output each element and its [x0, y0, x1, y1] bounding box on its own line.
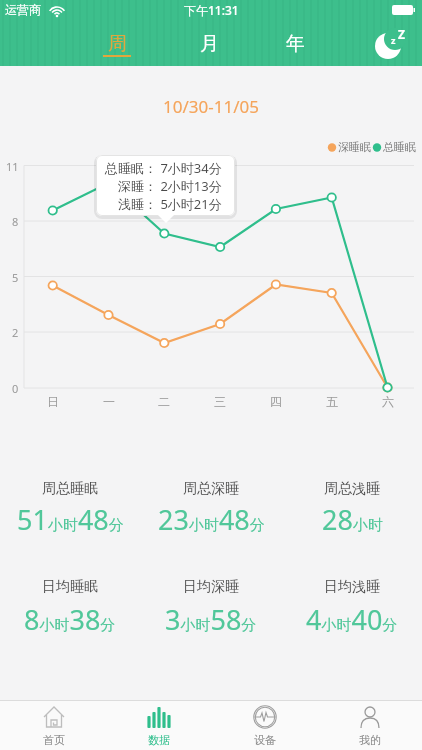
staticText: 10/30-11/05 [163, 95, 259, 118]
button[interactable]: 我的 [317, 700, 422, 750]
staticText: 首页 [43, 733, 65, 747]
staticText: 3小时58分 [165, 601, 257, 638]
staticText: 浅睡： 5小时21分 [118, 195, 222, 213]
staticText: 4小时40分 [306, 601, 398, 638]
button[interactable]: z [365, 22, 415, 66]
staticText: Z [398, 26, 405, 42]
staticText: 周总浅睡 [324, 480, 380, 498]
staticText: 日均睡眠 [42, 578, 98, 596]
staticText: 下午11:31 [184, 2, 239, 18]
staticText: 23小时48分 [158, 501, 265, 538]
staticText: 28小时 [322, 501, 383, 538]
staticText: 我的 [359, 733, 381, 747]
staticText: 深睡： 2小时13分 [118, 177, 222, 195]
staticText: 年 [286, 32, 305, 56]
staticText: 三 [214, 394, 226, 409]
staticText: 51小时48分 [17, 501, 124, 538]
staticText: 五 [326, 394, 338, 409]
staticText: 总睡眠： 7小时34分 [105, 159, 222, 177]
staticText: 周总深睡 [183, 480, 239, 498]
staticText: z [391, 34, 396, 46]
staticText: 日均浅睡 [324, 578, 380, 596]
staticText: 11 [6, 159, 19, 174]
button[interactable]: 年 [265, 22, 325, 66]
staticText: 四 [270, 394, 282, 409]
staticText: 深睡眠 [338, 140, 371, 154]
staticText: 2 [12, 325, 19, 340]
staticText: 月 [200, 32, 219, 56]
staticText: 运营商 [5, 2, 41, 17]
button[interactable]: 月 [179, 22, 239, 66]
button[interactable]: 周 [87, 22, 147, 66]
staticText: 六 [382, 394, 394, 409]
staticText: 设备 [254, 733, 276, 747]
staticText: 日均深睡 [183, 578, 239, 596]
staticText: 周总睡眠 [42, 480, 98, 498]
staticText: 8 [12, 214, 19, 229]
staticText: 周 [108, 32, 127, 56]
staticText: 二 [158, 394, 170, 409]
staticText: 数据 [148, 733, 170, 747]
staticText: 0 [12, 381, 19, 396]
staticText: 8小时38分 [24, 601, 116, 638]
button[interactable]: 数据 [106, 700, 211, 750]
button[interactable]: 首页 [1, 700, 106, 750]
staticText: 5 [12, 270, 19, 285]
button[interactable]: 设备 [212, 700, 317, 750]
staticText: 日 [47, 394, 59, 409]
staticText: 总睡眠 [383, 140, 416, 154]
staticText: 一 [103, 394, 115, 409]
